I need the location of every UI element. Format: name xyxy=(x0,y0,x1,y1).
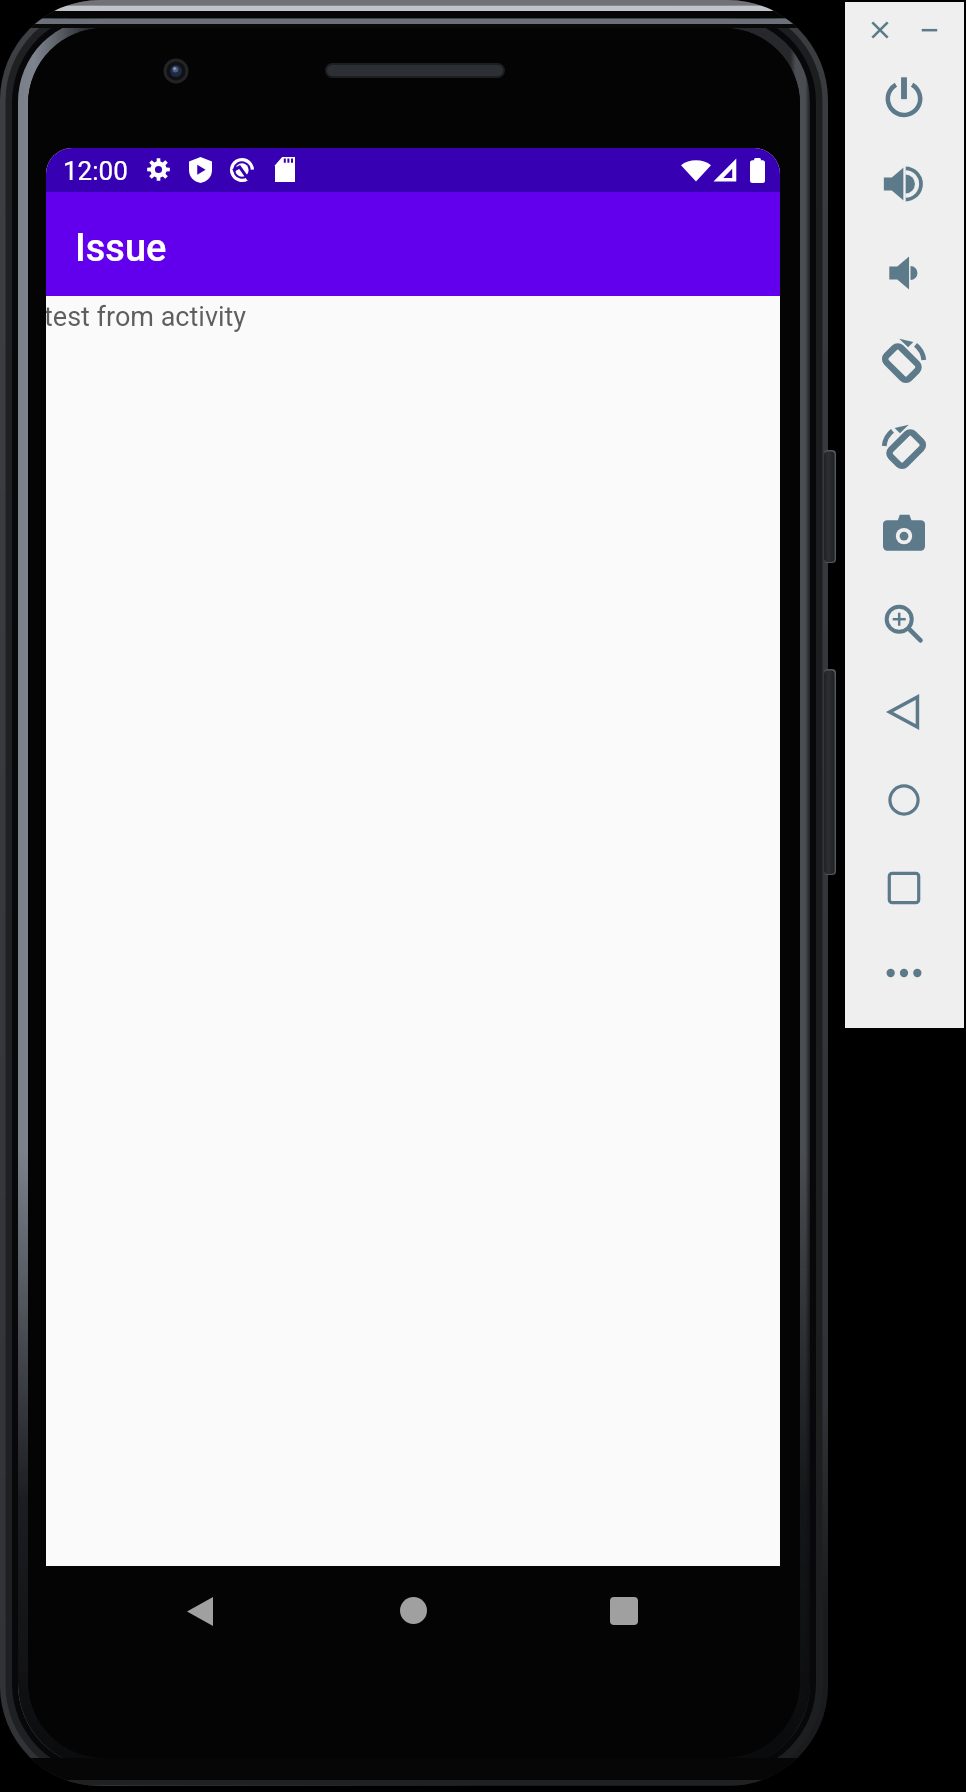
staticText: Issue xyxy=(75,226,167,271)
staticText: test from activity xyxy=(46,301,247,333)
button[interactable]: Volume up xyxy=(883,163,925,205)
button[interactable]: Power xyxy=(883,75,925,117)
other: Signal xyxy=(713,158,737,182)
other: Settings xyxy=(147,158,170,181)
button[interactable]: Back xyxy=(888,696,920,728)
button[interactable]: Zoom xyxy=(884,604,922,642)
other: Play Protect xyxy=(189,157,212,183)
other: Battery xyxy=(750,158,765,183)
button[interactable]: Rotate left xyxy=(880,336,928,384)
button[interactable]: Minimize xyxy=(918,18,942,42)
other: Wi-Fi xyxy=(681,158,711,182)
button[interactable]: Back xyxy=(187,1597,213,1626)
button[interactable]: Rotate right xyxy=(880,422,928,470)
button[interactable]: Volume down xyxy=(883,252,925,294)
button[interactable]: Home xyxy=(400,1597,427,1624)
other: SD card xyxy=(275,157,295,182)
button[interactable]: Take screenshot xyxy=(883,513,925,555)
button[interactable]: Close xyxy=(868,18,892,42)
button[interactable]: Home xyxy=(888,784,920,816)
button[interactable]: Recent apps xyxy=(610,1597,638,1625)
button[interactable]: More xyxy=(886,955,922,991)
button[interactable]: Overview xyxy=(888,872,920,904)
staticText: 12:00 xyxy=(63,156,128,186)
other: Location xyxy=(229,157,255,183)
